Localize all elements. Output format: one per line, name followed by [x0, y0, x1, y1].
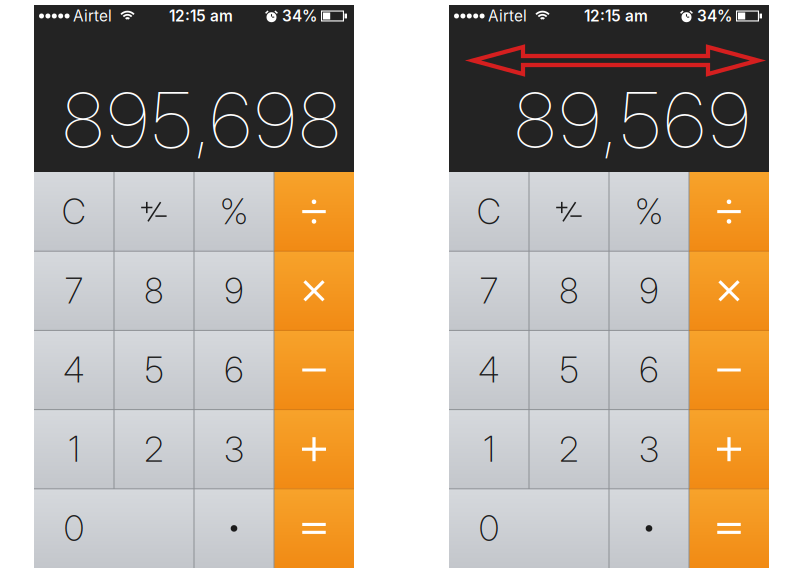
button[interactable]: 0 — [34, 489, 194, 568]
button[interactable]: % — [609, 172, 689, 251]
staticText: 7 — [65, 270, 83, 312]
staticText: 0 — [64, 507, 84, 549]
staticText: 0 — [479, 507, 499, 549]
staticText: 5 — [145, 349, 163, 391]
button[interactable]: 1 — [449, 410, 529, 489]
button[interactable] — [689, 172, 769, 251]
button[interactable] — [689, 330, 769, 410]
button[interactable]: 9 — [609, 251, 689, 330]
button[interactable]: % — [194, 172, 274, 251]
button[interactable]: C — [449, 172, 529, 251]
staticText: 8 — [144, 270, 163, 312]
staticText: C — [62, 191, 86, 232]
button[interactable]: 8 — [114, 251, 194, 330]
button[interactable]: 6 — [194, 330, 274, 410]
staticText: 9 — [639, 270, 658, 312]
button[interactable]: 0 — [449, 489, 609, 568]
button[interactable] — [274, 410, 354, 489]
staticText: 895,698 — [63, 73, 340, 167]
staticText: 34% — [697, 7, 732, 25]
staticText: 3 — [224, 428, 243, 470]
button[interactable]: 8 — [529, 251, 609, 330]
button[interactable]: 1 — [34, 410, 114, 489]
button[interactable] — [689, 489, 769, 568]
staticText: 6 — [639, 349, 658, 391]
staticText: 5 — [560, 349, 578, 391]
staticText: 4 — [63, 349, 84, 391]
staticText: Airtel — [488, 7, 527, 25]
staticText: 89,569 — [515, 73, 749, 167]
staticText: Airtel — [73, 7, 112, 25]
staticText: C — [477, 191, 501, 232]
staticText: 34% — [282, 7, 317, 25]
staticText: 1 — [483, 428, 494, 470]
button[interactable]: 9 — [194, 251, 274, 330]
staticText: 12:15 am — [169, 7, 233, 25]
button[interactable] — [689, 410, 769, 489]
staticText: 2 — [144, 428, 163, 470]
button[interactable]: 6 — [609, 330, 689, 410]
staticText: 7 — [480, 270, 498, 312]
button[interactable]: C — [34, 172, 114, 251]
button[interactable]: 7 — [34, 251, 114, 330]
button[interactable] — [274, 489, 354, 568]
button[interactable] — [274, 172, 354, 251]
button[interactable]: 2 — [114, 410, 194, 489]
staticText: 12:15 am — [584, 7, 648, 25]
button[interactable]: 3 — [609, 410, 689, 489]
button[interactable]: 3 — [194, 410, 274, 489]
button[interactable] — [689, 251, 769, 330]
staticText: 6 — [224, 349, 243, 391]
button[interactable]: 7 — [449, 251, 529, 330]
staticText: % — [220, 191, 248, 232]
button[interactable] — [274, 330, 354, 410]
staticText: 4 — [478, 349, 499, 391]
staticText: 2 — [559, 428, 578, 470]
button[interactable] — [609, 489, 689, 568]
staticText: 9 — [224, 270, 243, 312]
button[interactable]: 4 — [34, 330, 114, 410]
staticText: 8 — [559, 270, 578, 312]
button[interactable] — [529, 172, 609, 251]
button[interactable]: 2 — [529, 410, 609, 489]
button[interactable] — [194, 489, 274, 568]
button[interactable]: 5 — [529, 330, 609, 410]
button[interactable] — [274, 251, 354, 330]
button[interactable] — [114, 172, 194, 251]
button[interactable]: 5 — [114, 330, 194, 410]
staticText: 1 — [68, 428, 79, 470]
button[interactable]: 4 — [449, 330, 529, 410]
staticText: % — [635, 191, 663, 232]
staticText: 3 — [639, 428, 658, 470]
